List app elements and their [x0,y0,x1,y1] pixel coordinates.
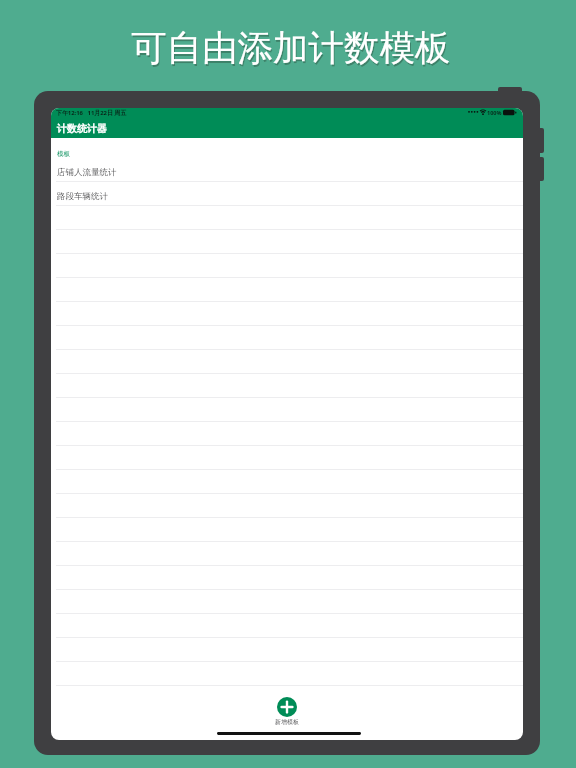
staticText: 路段车辆统计 [57,191,108,202]
staticText: 下午12:16 11月22日 周五 [56,109,127,117]
button[interactable] [51,518,523,542]
button[interactable] [51,302,523,326]
button[interactable] [51,254,523,278]
button[interactable] [51,470,523,494]
button[interactable] [277,697,297,717]
button[interactable] [51,206,523,230]
button[interactable] [51,566,523,590]
staticText: 可自由添加计数模板 [132,28,452,73]
button[interactable]: 路段车辆统计 [51,182,523,206]
button[interactable] [51,398,523,422]
button[interactable] [51,350,523,374]
button[interactable] [51,662,523,686]
button[interactable] [51,446,523,470]
button[interactable] [51,326,523,350]
button[interactable] [51,590,523,614]
button[interactable] [51,422,523,446]
staticText: 可自由添加计数模板 [131,26,451,71]
button[interactable]: 店铺人流量统计 [51,158,523,182]
staticText: 模板 [57,150,70,158]
staticText: 新增模板 [275,718,299,726]
button[interactable] [51,278,523,302]
button[interactable] [51,374,523,398]
button[interactable] [51,494,523,518]
staticText: 100% [487,109,502,116]
button[interactable] [51,638,523,662]
button[interactable] [51,542,523,566]
staticText: 计数统计器 [57,122,107,135]
staticText: 店铺人流量统计 [57,167,117,178]
button[interactable] [51,230,523,254]
button[interactable] [51,614,523,638]
